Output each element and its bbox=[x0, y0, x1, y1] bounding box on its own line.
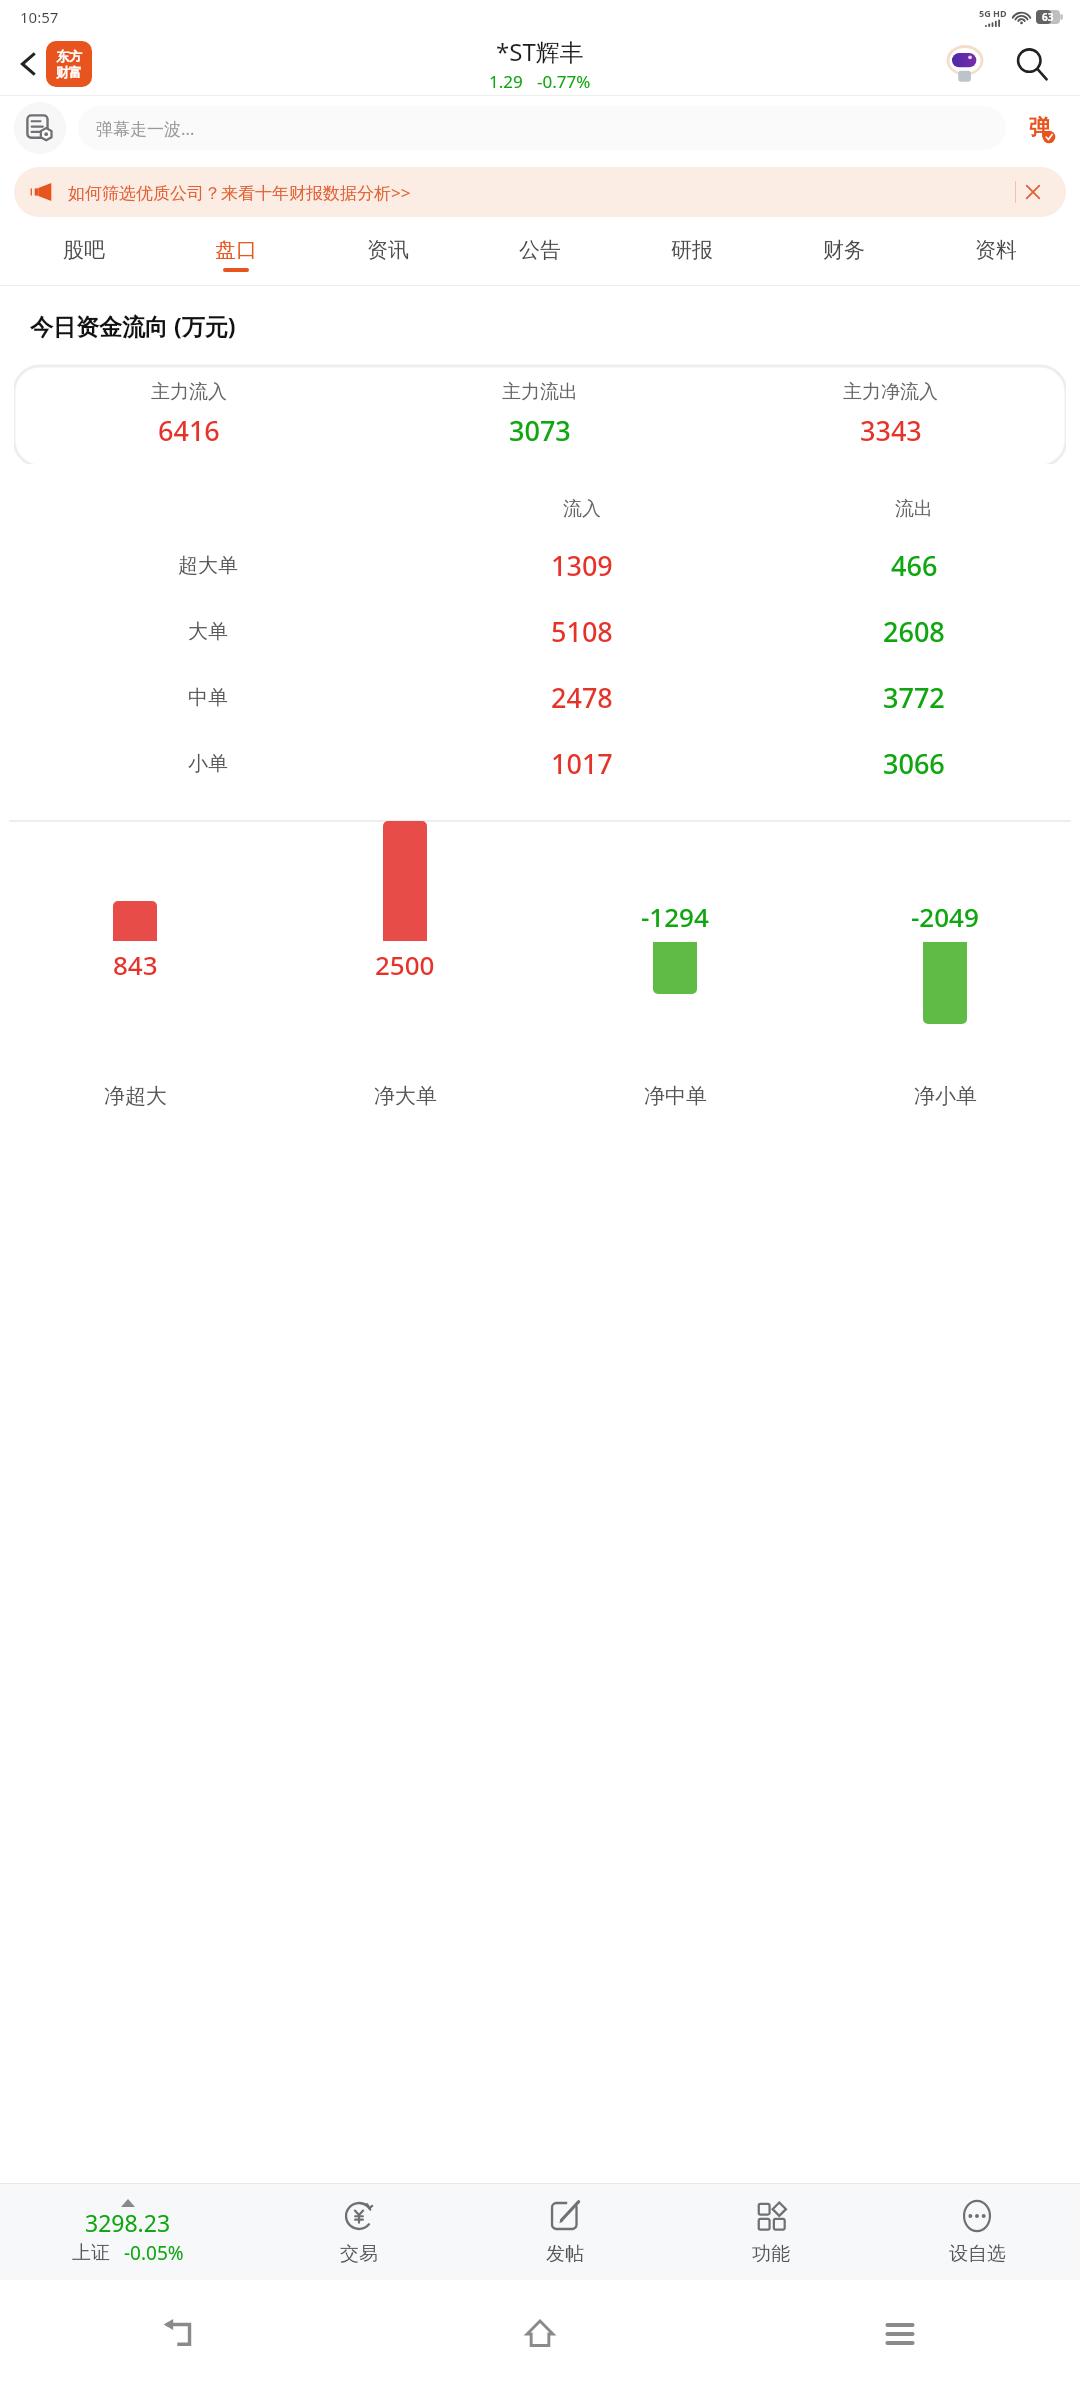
staticText: 功能 bbox=[752, 2242, 790, 2266]
staticText: 466 bbox=[891, 547, 938, 584]
button[interactable]: 中单 bbox=[0, 664, 1080, 730]
button[interactable]: -1294 bbox=[540, 821, 810, 1061]
staticText: 3298.23 bbox=[85, 2207, 171, 2238]
button[interactable]: East Money logo bbox=[46, 41, 92, 87]
staticText: 发帖 bbox=[546, 2242, 584, 2266]
staticText: 净大单 bbox=[374, 1083, 437, 1109]
staticText: 上证 bbox=[72, 2241, 110, 2265]
button[interactable]: 2500 bbox=[270, 821, 540, 1061]
button[interactable]: 如何筛选优质公司？来看十年财报数据分析>> bbox=[14, 167, 1066, 217]
button[interactable]: 资讯 bbox=[312, 223, 464, 285]
button[interactable]: 交易 bbox=[256, 2184, 462, 2280]
button[interactable]: Close banner bbox=[1016, 175, 1050, 209]
button[interactable]: 功能 bbox=[668, 2184, 874, 2280]
staticText: 主力净流入 bbox=[843, 380, 938, 404]
staticText: 设自选 bbox=[949, 2242, 1006, 2266]
staticText: 财务 bbox=[823, 237, 865, 263]
staticText: 弹幕走一波… bbox=[96, 117, 195, 140]
button[interactable]: 弹幕走一波… bbox=[78, 106, 1006, 150]
staticText: 主力流出 bbox=[502, 380, 578, 404]
staticText: 2608 bbox=[883, 613, 945, 650]
button[interactable]: 发帖 bbox=[462, 2184, 668, 2280]
staticText: 净超大 bbox=[104, 1083, 167, 1109]
button[interactable]: Assistant bbox=[942, 41, 988, 87]
staticText: 弹 bbox=[1029, 114, 1051, 142]
staticText: 2500 bbox=[375, 947, 435, 982]
button[interactable]: 843 bbox=[0, 821, 270, 1061]
button[interactable]: Search bbox=[1006, 38, 1058, 90]
staticText: 财富 bbox=[56, 64, 82, 80]
button[interactable]: 财务 bbox=[768, 223, 920, 285]
staticText: 资讯 bbox=[367, 237, 409, 263]
staticText: 843 bbox=[113, 947, 158, 982]
staticText: 公告 bbox=[519, 237, 561, 263]
staticText: 63 bbox=[1042, 10, 1054, 24]
button[interactable]: 3298.23 bbox=[0, 2184, 256, 2280]
staticText: 1309 bbox=[551, 547, 613, 584]
staticText: 5G HD bbox=[979, 7, 1007, 19]
staticText: 2478 bbox=[551, 679, 613, 716]
staticText: -0.05% bbox=[124, 2240, 184, 2266]
button[interactable]: 股吧 bbox=[8, 223, 160, 285]
staticText: 3066 bbox=[883, 745, 945, 782]
staticText: -2049 bbox=[911, 899, 979, 934]
staticText: 中单 bbox=[188, 685, 228, 710]
button[interactable]: 盘口 bbox=[160, 223, 312, 285]
staticText: 1.29 bbox=[489, 70, 523, 93]
staticText: 如何筛选优质公司？来看十年财报数据分析>> bbox=[68, 181, 1007, 204]
button[interactable]: 设自选 bbox=[874, 2184, 1080, 2280]
staticText: 大单 bbox=[188, 619, 228, 644]
staticText: 3073 bbox=[509, 412, 571, 449]
staticText: 5108 bbox=[551, 613, 613, 650]
staticText: 1017 bbox=[551, 745, 613, 782]
staticText: 6416 bbox=[158, 412, 220, 449]
button[interactable]: 资料 bbox=[920, 223, 1072, 285]
button[interactable]: 研报 bbox=[616, 223, 768, 285]
staticText: 10:57 bbox=[20, 7, 59, 27]
staticText: *ST辉丰 bbox=[496, 35, 584, 68]
staticText: 今日资金流向 (万元) bbox=[30, 310, 236, 341]
staticText: 研报 bbox=[671, 237, 713, 263]
button[interactable]: -2049 bbox=[810, 821, 1080, 1061]
staticText: 主力流入 bbox=[151, 380, 227, 404]
button[interactable]: Back bbox=[10, 45, 46, 83]
staticText: 小单 bbox=[188, 751, 228, 776]
button[interactable]: 小单 bbox=[0, 730, 1080, 796]
staticText: -1294 bbox=[641, 899, 709, 934]
staticText: 流入 bbox=[563, 497, 601, 521]
button[interactable]: 主力流入 bbox=[14, 364, 1066, 464]
staticText: 净中单 bbox=[644, 1083, 707, 1109]
button[interactable]: Back bbox=[0, 2280, 360, 2388]
button[interactable]: 公告 bbox=[464, 223, 616, 285]
staticText: 超大单 bbox=[178, 553, 238, 578]
staticText: 资料 bbox=[975, 237, 1017, 263]
button[interactable]: 大单 bbox=[0, 598, 1080, 664]
button[interactable]: 超大单 bbox=[0, 532, 1080, 598]
staticText: 东方 bbox=[56, 48, 82, 64]
button[interactable]: Report bbox=[14, 102, 66, 154]
staticText: 3343 bbox=[860, 412, 922, 449]
staticText: 3772 bbox=[883, 679, 945, 716]
staticText: 净小单 bbox=[914, 1083, 977, 1109]
staticText: 盘口 bbox=[215, 237, 257, 263]
staticText: -0.77% bbox=[537, 70, 591, 93]
staticText: 股吧 bbox=[63, 237, 105, 263]
staticText: 交易 bbox=[340, 2242, 378, 2266]
button[interactable]: Home bbox=[360, 2280, 720, 2388]
staticText: 流出 bbox=[895, 497, 933, 521]
button[interactable]: Danmaku toggle bbox=[1014, 102, 1066, 154]
button[interactable]: Recents bbox=[720, 2280, 1080, 2388]
